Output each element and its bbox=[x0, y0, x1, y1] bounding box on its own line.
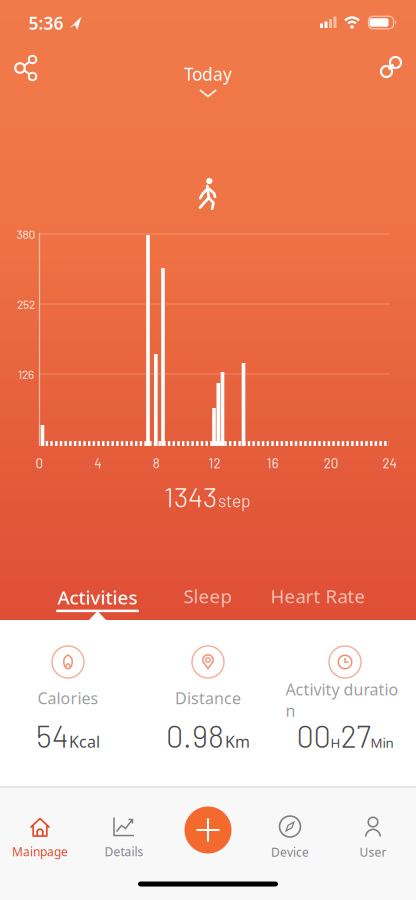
button[interactable]: Device bbox=[250, 810, 330, 866]
staticText: 12 bbox=[208, 455, 220, 471]
staticText: 4 bbox=[94, 455, 101, 471]
staticText: 16 bbox=[267, 455, 279, 471]
button[interactable]: Activities bbox=[56, 585, 139, 612]
staticText: step bbox=[218, 490, 250, 511]
staticText: 126 bbox=[18, 367, 34, 381]
button[interactable]: Mainpage bbox=[0, 810, 80, 866]
staticText: Activity duratio bbox=[285, 679, 398, 700]
button[interactable]: Today bbox=[184, 62, 232, 97]
button[interactable]: User bbox=[333, 810, 413, 866]
staticText: 00 bbox=[296, 717, 330, 754]
button[interactable]: Details bbox=[84, 810, 164, 866]
staticText: Sleep bbox=[183, 584, 231, 608]
staticText: 8 bbox=[153, 455, 160, 471]
staticText: n bbox=[285, 700, 295, 721]
staticText: Km bbox=[225, 731, 250, 752]
button[interactable]: Heart Rate bbox=[258, 576, 378, 616]
staticText: Device bbox=[271, 844, 309, 860]
button[interactable] bbox=[369, 45, 413, 89]
staticText: Activities bbox=[57, 585, 137, 610]
staticText: Distance bbox=[175, 687, 241, 709]
button[interactable]: Sleep bbox=[162, 576, 252, 616]
staticText: Today bbox=[184, 62, 232, 85]
staticText: 20 bbox=[324, 455, 339, 471]
staticText: 1343 bbox=[164, 479, 217, 513]
staticText: 380 bbox=[16, 227, 35, 241]
staticText: Min bbox=[370, 734, 393, 751]
staticText: Kcal bbox=[69, 731, 100, 752]
button[interactable] bbox=[5, 46, 49, 90]
button[interactable] bbox=[184, 806, 231, 853]
staticText: 0 bbox=[35, 455, 43, 471]
staticText: 54 bbox=[36, 717, 68, 754]
staticText: 252 bbox=[17, 297, 35, 311]
staticText: Mainpage bbox=[12, 843, 68, 859]
staticText: 27 bbox=[340, 717, 370, 754]
staticText: Calories bbox=[37, 687, 98, 709]
staticText: Details bbox=[104, 843, 143, 859]
staticText: 24 bbox=[382, 455, 396, 471]
staticText: 0.98 bbox=[166, 717, 224, 754]
staticText: User bbox=[359, 844, 386, 860]
staticText: Heart Rate bbox=[270, 584, 365, 608]
staticText: 5:36 bbox=[28, 11, 63, 34]
staticText: H bbox=[330, 734, 340, 751]
